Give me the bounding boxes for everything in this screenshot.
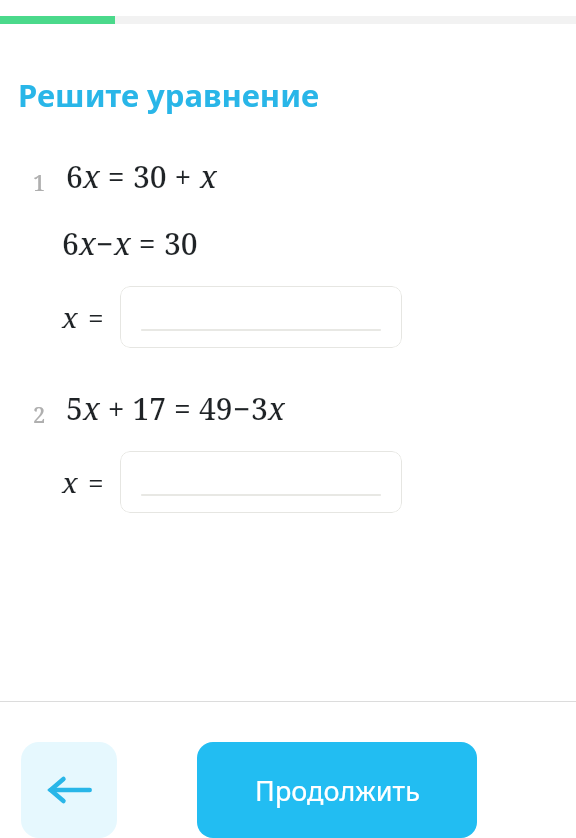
staticText: x (83, 388, 100, 429)
staticText: = (131, 223, 164, 264)
staticText: = (88, 463, 104, 501)
staticText: x (268, 388, 285, 429)
staticText: 49 (199, 388, 233, 429)
staticText: = (88, 298, 104, 336)
staticText: x (62, 463, 78, 501)
staticText: 6 (62, 223, 79, 264)
button[interactable] (120, 451, 402, 513)
staticText: + 17 = (100, 388, 199, 429)
staticText: 30 + (133, 156, 200, 197)
staticText: x (62, 298, 78, 336)
staticText: 3 (251, 388, 268, 429)
staticText: 30 (164, 223, 198, 264)
staticText: Продолжить (255, 772, 420, 809)
staticText: 2 (33, 399, 46, 429)
button[interactable]: Назад (21, 742, 117, 838)
staticText: x (200, 156, 217, 197)
button[interactable]: Продолжить (197, 742, 477, 838)
staticText: = (100, 156, 133, 197)
staticText: x (79, 223, 96, 264)
staticText: Решите уравнение (18, 74, 320, 116)
staticText: x (83, 156, 100, 197)
staticText: 6 (66, 156, 83, 197)
staticText: − (96, 223, 114, 264)
button[interactable] (120, 286, 402, 348)
staticText: x (114, 223, 131, 264)
staticText: 1 (33, 167, 46, 197)
staticText: 5 (66, 388, 83, 429)
staticText: − (233, 388, 251, 429)
